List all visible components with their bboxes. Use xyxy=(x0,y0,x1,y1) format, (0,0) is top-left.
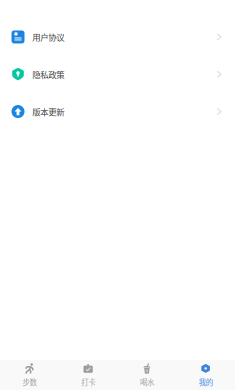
button[interactable]: 用户协议 xyxy=(0,18,235,56)
button[interactable]: 版本更新 xyxy=(0,93,235,130)
button[interactable]: 喝水 xyxy=(117,360,176,390)
staticText: 隐私政策 xyxy=(32,68,64,80)
staticText: 喝水 xyxy=(140,377,154,387)
staticText: 打卡 xyxy=(81,377,95,387)
staticText: 版本更新 xyxy=(32,105,64,118)
staticText: 我的 xyxy=(199,377,213,387)
button[interactable]: 步数 xyxy=(0,360,59,390)
staticText: 用户协议 xyxy=(32,31,64,43)
staticText: 步数 xyxy=(22,377,36,387)
button[interactable]: 打卡 xyxy=(59,360,118,390)
button[interactable]: 隐私政策 xyxy=(0,56,235,93)
button[interactable]: 我的 xyxy=(176,360,235,390)
